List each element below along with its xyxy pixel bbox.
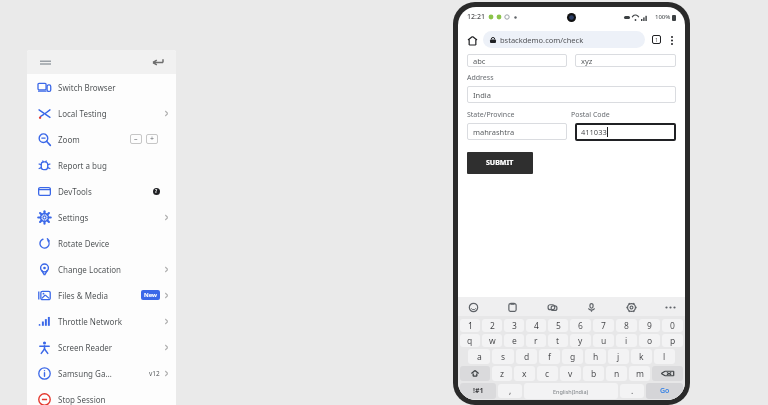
button[interactable]: DevTools xyxy=(27,178,176,204)
staticText: Report a bug xyxy=(58,160,107,171)
button[interactable]: Zoom in xyxy=(146,134,158,144)
staticText: f xyxy=(548,351,551,363)
button[interactable]: p xyxy=(662,334,683,347)
staticText: m xyxy=(636,368,644,380)
button[interactable]: Keyboard settings xyxy=(624,300,638,314)
staticText: Samsung Ga… xyxy=(58,368,112,379)
staticText: a xyxy=(477,351,482,363)
button[interactable]: i xyxy=(616,334,637,347)
button[interactable]: Tabs xyxy=(650,33,663,46)
button[interactable]: a xyxy=(468,349,490,364)
button[interactable]: h xyxy=(585,349,606,364)
button[interactable]: Throttle Network xyxy=(27,308,176,334)
staticText: 9 xyxy=(647,320,652,332)
button[interactable]: m xyxy=(629,366,650,381)
button[interactable]: t xyxy=(548,334,568,347)
button[interactable]: Zoom out xyxy=(130,134,142,144)
button[interactable]: Go xyxy=(646,383,683,399)
button[interactable]: 411033 xyxy=(575,123,676,141)
button[interactable]: u xyxy=(593,334,614,347)
staticText: 5 xyxy=(556,320,561,332)
button[interactable]: v xyxy=(560,366,581,381)
button[interactable]: 2 xyxy=(482,319,502,332)
button[interactable]: Report a bug xyxy=(27,152,176,178)
button[interactable]: z xyxy=(492,366,512,381)
button[interactable]: SUBMIT xyxy=(467,152,533,174)
button[interactable]: Screen Reader xyxy=(27,334,176,360)
button[interactable]: Zoom xyxy=(27,126,176,152)
button[interactable]: 0 xyxy=(662,319,683,332)
button[interactable]: Rotate Device xyxy=(27,230,176,256)
staticText: !#1 xyxy=(473,386,484,396)
button[interactable]: Switch Browser xyxy=(27,74,176,100)
button[interactable]: 4 xyxy=(526,319,546,332)
button[interactable]: Stickers xyxy=(545,300,559,314)
button[interactable]: 7 xyxy=(593,319,614,332)
button[interactable]: q xyxy=(460,334,480,347)
button[interactable]: More xyxy=(663,300,677,314)
button[interactable]: 3 xyxy=(504,319,524,332)
button[interactable]: Backspace xyxy=(652,366,683,381)
staticText: Zoom xyxy=(58,134,80,145)
staticText: India xyxy=(473,90,491,100)
staticText: ? xyxy=(155,188,158,195)
button[interactable]: Emoji xyxy=(466,300,480,314)
button[interactable]: x xyxy=(514,366,535,381)
staticText: 0 xyxy=(670,320,675,332)
staticText: 4 xyxy=(534,320,539,332)
button[interactable]: 5 xyxy=(548,319,568,332)
button[interactable]: 8 xyxy=(616,319,637,332)
staticText: 100% xyxy=(655,13,671,21)
staticText: Stop Session xyxy=(58,394,106,405)
button[interactable]: bstackdemo.com/check xyxy=(483,31,645,48)
staticText: z xyxy=(500,368,504,380)
button[interactable]: 1 xyxy=(460,319,480,332)
button[interactable]: English(India) xyxy=(524,383,618,399)
staticText: 12:21 xyxy=(467,12,485,22)
staticText: Postal Code xyxy=(571,110,676,120)
button[interactable]: c xyxy=(537,366,558,381)
button[interactable]: f xyxy=(539,349,560,364)
button[interactable]: Clipboard xyxy=(505,300,519,314)
button[interactable]: Files & Media xyxy=(27,282,176,308)
button[interactable]: !#1 xyxy=(460,383,496,399)
button[interactable]: e xyxy=(504,334,524,347)
button[interactable]: India xyxy=(467,86,676,103)
button[interactable]: b xyxy=(583,366,604,381)
button[interactable]: Settings xyxy=(27,204,176,230)
button[interactable]: mahrashtra xyxy=(467,123,567,140)
button[interactable]: Voice input xyxy=(584,300,598,314)
button[interactable]: g xyxy=(562,349,583,364)
button[interactable]: w xyxy=(482,334,502,347)
button[interactable]: Home xyxy=(465,33,479,47)
button[interactable]: k xyxy=(631,349,652,364)
button[interactable]: Change Location xyxy=(27,256,176,282)
button[interactable]: d xyxy=(516,349,537,364)
button[interactable]: j xyxy=(608,349,629,364)
button[interactable]: Collapse xyxy=(151,55,165,69)
staticText: k xyxy=(639,351,644,363)
button[interactable]: Shift xyxy=(460,366,490,381)
button[interactable]: o xyxy=(639,334,660,347)
button[interactable]: 6 xyxy=(570,319,591,332)
staticText: b xyxy=(591,368,597,380)
button[interactable]: abc xyxy=(467,54,567,67)
staticText: w xyxy=(489,335,496,347)
button[interactable]: Samsung Ga… xyxy=(27,360,176,386)
button[interactable]: . xyxy=(620,384,644,398)
button[interactable]: xyz xyxy=(575,54,676,67)
button[interactable]: , xyxy=(498,384,522,398)
button[interactable]: l xyxy=(654,349,675,364)
staticText: c xyxy=(545,368,550,380)
button[interactable]: n xyxy=(606,366,627,381)
button[interactable]: y xyxy=(570,334,591,347)
button[interactable]: s xyxy=(492,349,514,364)
button[interactable]: More options xyxy=(666,34,678,46)
button[interactable]: r xyxy=(526,334,546,347)
button[interactable]: Local Testing xyxy=(27,100,176,126)
staticText: Go xyxy=(660,386,670,396)
staticText: Throttle Network xyxy=(58,316,122,327)
button[interactable]: 9 xyxy=(639,319,660,332)
button[interactable]: Stop Session xyxy=(27,386,176,405)
button[interactable]: Menu xyxy=(38,55,52,69)
